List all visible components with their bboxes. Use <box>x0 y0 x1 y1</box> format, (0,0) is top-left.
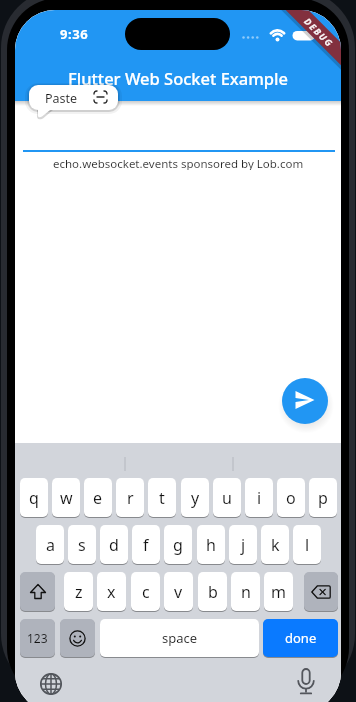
button[interactable]: i <box>245 478 273 517</box>
staticText: n <box>241 581 251 603</box>
button[interactable] <box>40 673 62 695</box>
button[interactable]: h <box>197 525 225 564</box>
button[interactable]: q <box>20 478 48 517</box>
staticText: done <box>285 629 317 647</box>
button[interactable]: p <box>309 478 337 517</box>
button[interactable]: y <box>181 478 209 517</box>
staticText: x <box>107 581 116 603</box>
button[interactable]: w <box>52 478 80 517</box>
button[interactable]: s <box>68 525 96 564</box>
button[interactable]: l <box>293 525 321 564</box>
staticText: z <box>75 581 83 603</box>
staticText: echo.websocket.events sponsored by Lob.c… <box>53 156 304 170</box>
staticText: 9:36 <box>60 25 89 43</box>
staticText: v <box>174 581 183 603</box>
staticText: c <box>142 581 150 603</box>
button[interactable] <box>60 619 95 657</box>
staticText: o <box>286 487 296 509</box>
button[interactable]: d <box>100 525 128 564</box>
staticText: i <box>257 487 262 509</box>
staticText: p <box>318 487 328 509</box>
staticText: space <box>162 629 198 647</box>
button[interactable]: u <box>213 478 241 517</box>
staticText: d <box>109 534 119 556</box>
staticText: Flutter Web Socket Example <box>68 67 289 89</box>
button[interactable]: done <box>263 619 338 657</box>
staticText: y <box>191 487 200 509</box>
button[interactable]: e <box>84 478 112 517</box>
button[interactable]: c <box>131 572 160 611</box>
staticText: j <box>241 534 246 556</box>
staticText: DEBUG <box>302 15 337 50</box>
staticText: 123 <box>27 630 48 646</box>
button[interactable] <box>282 378 328 424</box>
button[interactable] <box>29 85 118 110</box>
button[interactable]: 123 <box>20 619 55 657</box>
button[interactable]: f <box>132 525 160 564</box>
button[interactable]: space <box>100 619 259 657</box>
staticText: k <box>271 534 280 556</box>
button[interactable]: v <box>164 572 193 611</box>
button[interactable] <box>295 665 317 697</box>
staticText: s <box>78 534 86 556</box>
button[interactable]: x <box>97 572 126 611</box>
staticText: t <box>159 487 165 509</box>
staticText: m <box>271 581 286 603</box>
staticText: f <box>143 534 149 556</box>
staticText: u <box>222 487 232 509</box>
staticText: q <box>29 487 39 509</box>
staticText: e <box>93 487 103 509</box>
button[interactable]: m <box>264 572 293 611</box>
button[interactable] <box>20 572 55 611</box>
button[interactable]: t <box>148 478 176 517</box>
staticText: h <box>206 534 216 556</box>
button[interactable] <box>304 572 338 611</box>
staticText: Paste <box>45 90 78 107</box>
staticText: r <box>127 487 134 509</box>
button[interactable]: k <box>261 525 289 564</box>
staticText: g <box>173 534 183 556</box>
staticText: l <box>305 534 310 556</box>
staticText: w <box>60 487 73 509</box>
button[interactable]: n <box>231 572 260 611</box>
button[interactable]: a <box>36 525 64 564</box>
button[interactable]: b <box>198 572 227 611</box>
button[interactable]: g <box>164 525 192 564</box>
button[interactable]: o <box>277 478 305 517</box>
staticText: b <box>208 581 218 603</box>
button[interactable]: r <box>116 478 144 517</box>
button[interactable]: z <box>64 572 93 611</box>
staticText: a <box>46 534 55 556</box>
button[interactable]: j <box>229 525 257 564</box>
